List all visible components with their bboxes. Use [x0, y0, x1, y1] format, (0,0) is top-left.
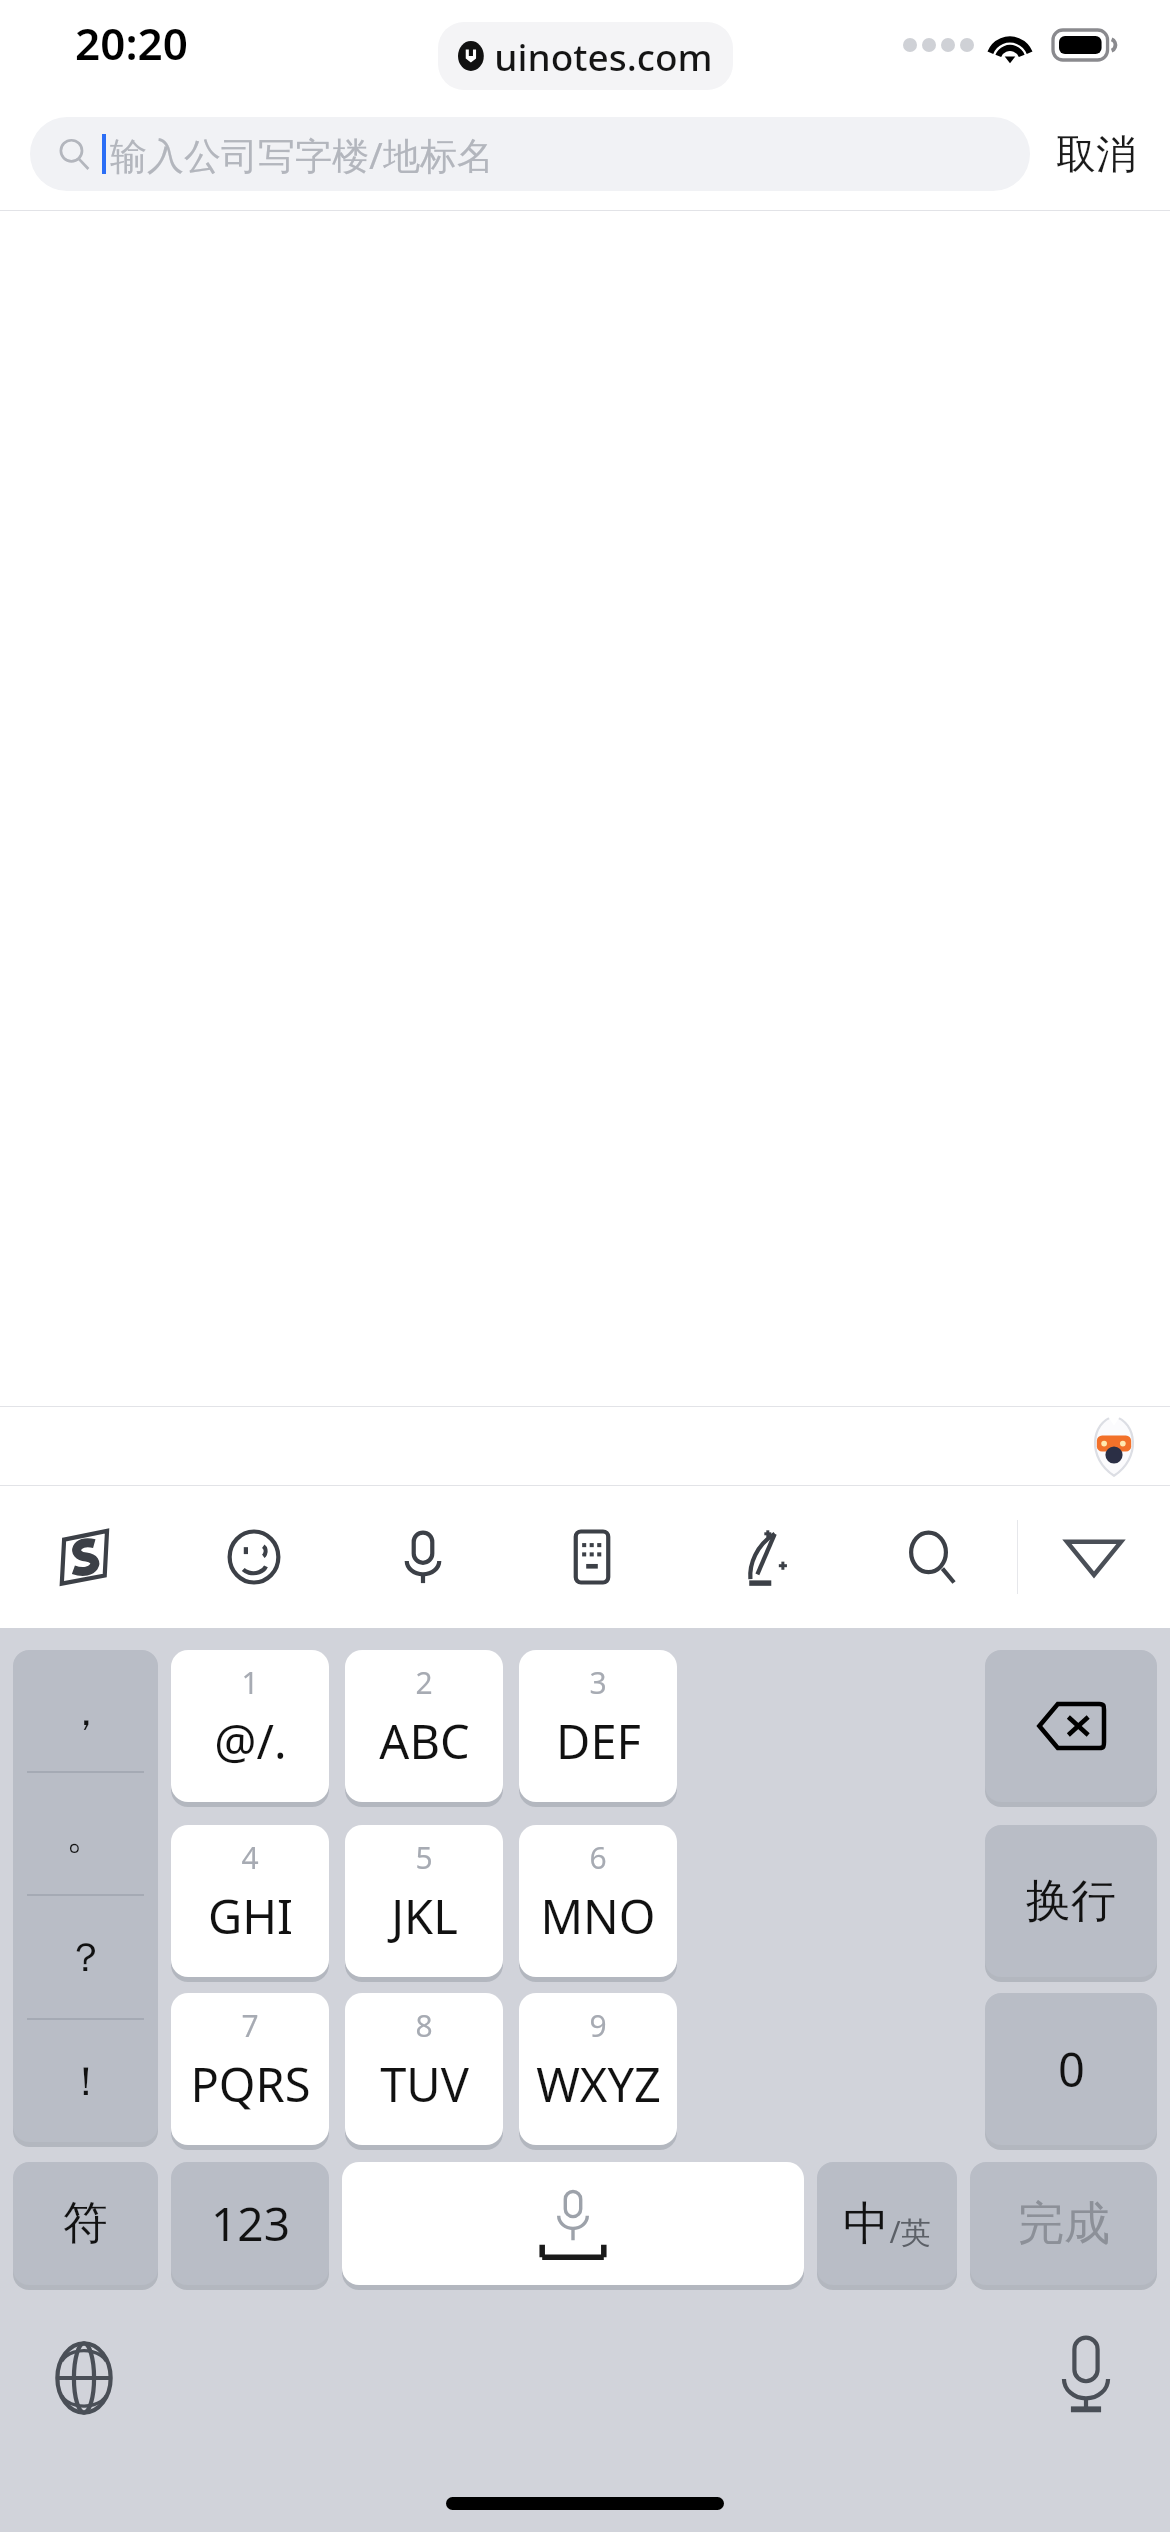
staticText: 9 — [589, 2005, 607, 2046]
button[interactable]: 输入公司写字楼/地标名 — [30, 117, 1030, 191]
button[interactable]: Sogou — [0, 1486, 169, 1628]
button[interactable]: Search — [847, 1486, 1017, 1628]
staticText: 3 — [589, 1662, 607, 1703]
button[interactable]: 5 JKL — [345, 1825, 503, 1977]
staticText: ？ — [66, 1932, 106, 1982]
button[interactable]: 换行 — [985, 1825, 1157, 1977]
staticText: ， — [66, 1686, 106, 1736]
staticText: 20:20 — [75, 13, 188, 73]
staticText: /英 — [889, 2211, 931, 2252]
button[interactable]: 中英切换 — [817, 2162, 957, 2285]
button[interactable]: Voice input — [338, 1486, 507, 1628]
button[interactable]: Emoji — [169, 1486, 338, 1628]
button[interactable]: Switch language — [48, 2342, 120, 2414]
button[interactable]: 3 DEF — [519, 1650, 677, 1802]
button[interactable]: 123 — [171, 2162, 329, 2285]
staticText: 123 — [211, 2192, 290, 2255]
staticText: 中 — [843, 2195, 889, 2253]
staticText: 完成 — [1018, 2195, 1110, 2253]
staticText: 5 — [415, 1837, 433, 1878]
staticText: uinotes.com — [494, 31, 713, 81]
staticText: 符 — [63, 2195, 108, 2252]
button[interactable]: 8 TUV — [345, 1993, 503, 2145]
staticText: PQRS — [190, 2052, 311, 2116]
staticText: 2 — [415, 1662, 433, 1703]
staticText: 0 — [1058, 2037, 1085, 2101]
staticText: DEF — [556, 1709, 641, 1773]
button[interactable]: 1 @/. — [171, 1650, 329, 1802]
staticText: TUV — [380, 2052, 469, 2116]
staticText: @/. — [214, 1709, 287, 1773]
staticText: ABC — [379, 1709, 470, 1773]
button[interactable]: 6 MNO — [519, 1825, 677, 1977]
button[interactable]: 取消 — [1030, 129, 1140, 179]
button[interactable]: Keyboard layout — [507, 1486, 677, 1628]
button[interactable]: Punctuation — [13, 1650, 158, 2142]
button[interactable]: 0 — [985, 1993, 1157, 2145]
button[interactable]: Hide keyboard — [1018, 1486, 1170, 1628]
staticText: ！ — [66, 2056, 106, 2106]
button[interactable]: 完成 — [970, 2162, 1157, 2285]
staticText: GHI — [208, 1884, 293, 1948]
staticText: 8 — [415, 2005, 433, 2046]
button[interactable]: Voice input — [1057, 2336, 1115, 2414]
staticText: 输入公司写字楼/地标名 — [110, 129, 494, 180]
staticText: 取消 — [1056, 129, 1136, 179]
button[interactable]: 4 GHI — [171, 1825, 329, 1977]
staticText: 7 — [241, 2005, 259, 2046]
staticText: 。 — [66, 1809, 106, 1859]
staticText: 6 — [589, 1837, 607, 1878]
staticText: 1 — [241, 1662, 259, 1703]
button[interactable]: Backspace — [985, 1650, 1157, 1802]
staticText: WXYZ — [536, 2052, 661, 2116]
button[interactable]: 7 PQRS — [171, 1993, 329, 2145]
button[interactable]: 9 WXYZ — [519, 1993, 677, 2145]
staticText: JKL — [391, 1884, 458, 1948]
staticText: 4 — [241, 1837, 259, 1878]
staticText: 换行 — [1026, 1873, 1116, 1930]
staticText: MNO — [540, 1884, 656, 1948]
button[interactable]: 2 ABC — [345, 1650, 503, 1802]
button[interactable]: Handwriting — [677, 1486, 847, 1628]
button[interactable]: Space / voice — [342, 2162, 804, 2285]
button[interactable]: 符 — [13, 2162, 158, 2285]
